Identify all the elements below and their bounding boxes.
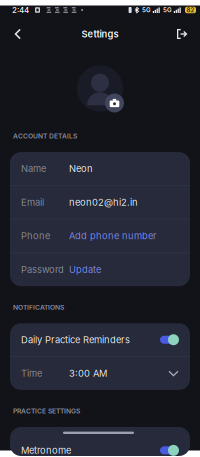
staticText: PRACTICE SETTINGS [13,407,80,415]
button[interactable]: Daily Practice Reminders [10,323,190,356]
button[interactable]: Metronome [10,434,190,456]
staticText: Time [21,368,42,379]
button[interactable]: Password [10,253,190,286]
staticText: Password [21,264,64,275]
button[interactable]: Time [10,357,190,390]
staticText: 3:00 AM [69,368,107,379]
staticText: Phone [21,230,50,242]
staticText: Name [21,163,46,174]
button[interactable]: Back [5,23,31,45]
staticText: Update [69,264,101,275]
staticText: neon02@hi2.in [69,197,138,208]
staticText: 82 [186,6,194,14]
staticText: Daily Practice Reminders [21,334,130,345]
staticText: Email [21,197,44,208]
button[interactable]: Change profile photo [76,65,123,112]
staticText: NOTIFICATIONS [13,303,64,311]
staticText: ACCOUNT DETAILS [13,132,77,140]
staticText: 2:44 [12,5,29,15]
button[interactable]: Log out [169,23,195,45]
button[interactable]: Email [10,186,190,219]
staticText: 5G [142,6,151,14]
staticText: 5G [163,6,172,14]
staticText: Settings [81,28,118,40]
staticText: Neon [69,163,93,174]
button[interactable]: Phone [10,219,190,252]
staticText: Add phone number [69,230,157,242]
button[interactable]: Name [10,152,190,185]
staticText: Metronome [21,445,71,456]
